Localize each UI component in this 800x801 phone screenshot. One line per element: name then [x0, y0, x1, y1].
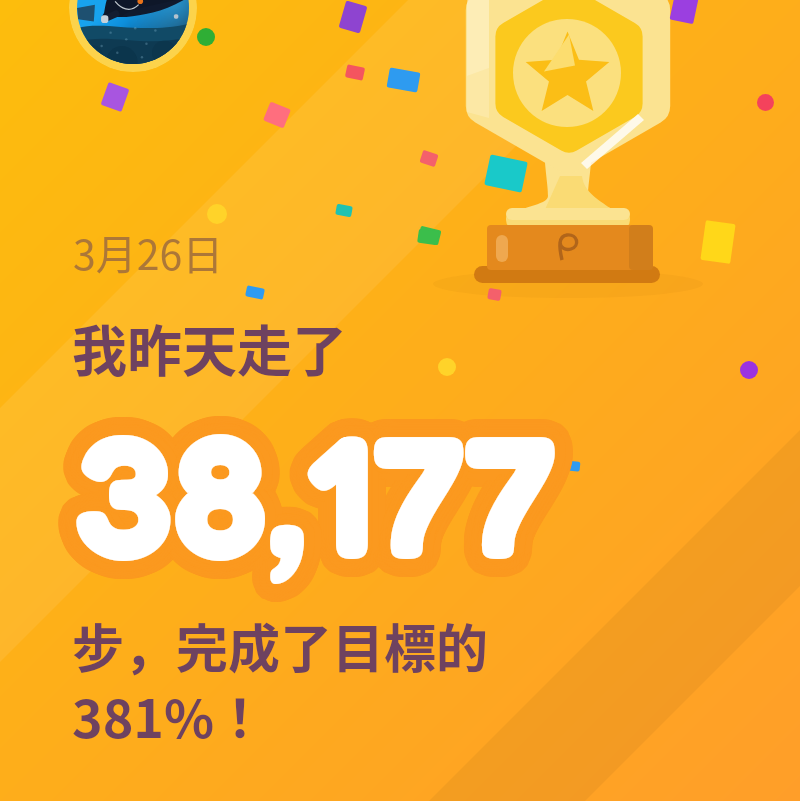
- staticText: 38,177: [82, 403, 564, 615]
- staticText: 38,177: [92, 387, 574, 599]
- staticText: 38,177: [74, 405, 556, 617]
- staticText: 38,177: [89, 376, 571, 588]
- staticText: 38,177: [64, 382, 546, 594]
- staticText: 我昨天走了: [72, 307, 348, 387]
- staticText: 38,177: [85, 372, 567, 584]
- staticText: 38,177: [69, 377, 551, 589]
- staticText: 38,177: [71, 405, 553, 617]
- staticText: 38,177: [87, 400, 569, 612]
- staticText: 38,177: [56, 384, 538, 596]
- staticText: 38,177: [68, 370, 550, 582]
- staticText: 38,177: [70, 390, 552, 602]
- staticText: 步，完成了目標的 381%！: [72, 608, 489, 753]
- staticText: 38,177: [77, 383, 559, 595]
- staticText: 38,177: [68, 404, 550, 616]
- staticText: 38,177: [90, 395, 572, 607]
- staticText: 38,177: [66, 371, 548, 583]
- staticText: 38,177: [72, 383, 554, 595]
- staticText: 38,177: [57, 393, 539, 605]
- staticText: 38,177: [87, 374, 569, 586]
- staticText: 38,177: [74, 382, 556, 594]
- staticText: 3月26日: [73, 222, 224, 281]
- staticText: 38,177: [69, 387, 551, 599]
- staticText: 38,177: [63, 384, 545, 596]
- staticText: 38,177: [91, 381, 573, 593]
- staticText: 38,177: [74, 369, 556, 581]
- staticText: 38,177: [58, 395, 540, 607]
- staticText: 38,177: [77, 369, 559, 581]
- staticText: 38,177: [66, 403, 548, 615]
- staticText: 38,177: [80, 397, 562, 609]
- staticText: 38,177: [78, 390, 560, 602]
- staticText: 38,177: [85, 402, 567, 614]
- staticText: 38,177: [63, 387, 545, 599]
- staticText: 38,177: [78, 385, 560, 597]
- staticText: 38,177: [77, 376, 559, 588]
- staticText: 38,177: [66, 395, 548, 607]
- staticText: 38,177: [71, 398, 553, 610]
- staticText: 38,177: [85, 387, 567, 599]
- staticText: 38,177: [74, 376, 556, 588]
- staticText: 38,177: [56, 390, 538, 602]
- staticText: 38,177: [71, 369, 553, 581]
- staticText: 38,177: [63, 390, 545, 602]
- staticText: 38,177: [85, 384, 567, 596]
- staticText: 38,177: [80, 404, 562, 616]
- button[interactable]: Profile photo: [69, 0, 197, 72]
- staticText: 38,177: [84, 382, 566, 594]
- staticText: 38,177: [85, 390, 567, 602]
- staticText: 38,177: [59, 376, 541, 588]
- staticText: 38,177: [77, 398, 559, 610]
- staticText: 38,177: [82, 379, 564, 591]
- staticText: 38,177: [71, 376, 553, 588]
- staticText: 38,177: [82, 371, 564, 583]
- staticText: 38,177: [61, 400, 543, 612]
- staticText: 38,177: [61, 374, 543, 586]
- staticText: 38,177: [69, 397, 551, 609]
- staticText: 38,177: [66, 379, 548, 591]
- staticText: 38,177: [80, 377, 562, 589]
- staticText: 38,177: [74, 387, 556, 599]
- staticText: 38,177: [74, 398, 556, 610]
- staticText: 38,177: [77, 405, 559, 617]
- staticText: 38,177: [91, 393, 573, 605]
- staticText: 38,177: [56, 387, 538, 599]
- staticText: 38,177: [77, 391, 559, 603]
- staticText: 38,177: [70, 385, 552, 597]
- staticText: 38,177: [82, 395, 564, 607]
- staticText: 38,177: [80, 370, 562, 582]
- staticText: 38,177: [58, 379, 540, 591]
- staticText: 38,177: [92, 390, 574, 602]
- staticText: 38,177: [79, 387, 561, 599]
- staticText: 38,177: [57, 381, 539, 593]
- staticText: 38,177: [63, 372, 545, 584]
- staticText: 38,177: [92, 384, 574, 596]
- staticText: 38,177: [63, 402, 545, 614]
- staticText: 38,177: [89, 398, 571, 610]
- staticText: 38,177: [74, 392, 556, 604]
- staticText: 38,177: [84, 393, 566, 605]
- staticText: 38,177: [72, 391, 554, 603]
- staticText: 38,177: [59, 398, 541, 610]
- staticText: 38,177: [64, 393, 546, 605]
- staticText: 38,177: [90, 379, 572, 591]
